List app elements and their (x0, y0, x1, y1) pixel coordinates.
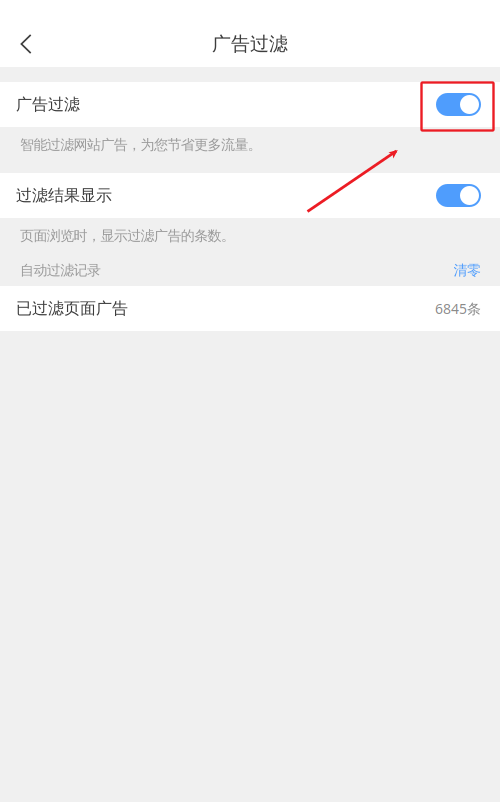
staticText: 6845条 (435, 299, 481, 318)
staticText: 过滤结果显示 (16, 185, 112, 206)
button[interactable]: 过滤结果显示开关 (436, 184, 481, 207)
staticText: 广告过滤 (16, 94, 80, 115)
staticText: 已过滤页面广告 (16, 298, 128, 319)
button[interactable]: 自动过滤记录 (0, 245, 500, 279)
staticText: 页面浏览时，显示过滤广告的条数。 (20, 227, 235, 245)
staticText: 清零 (454, 262, 481, 279)
button[interactable]: Back (6, 22, 46, 66)
staticText: 广告过滤 (212, 32, 288, 56)
button[interactable]: 广告过滤开关 (436, 93, 481, 116)
staticText: 自动过滤记录 (20, 262, 101, 279)
staticText: 智能过滤网站广告，为您节省更多流量。 (20, 136, 262, 154)
